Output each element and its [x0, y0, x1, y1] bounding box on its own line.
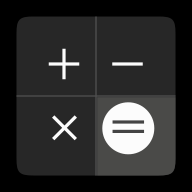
button[interactable]: Multiply: [41, 105, 87, 151]
button[interactable]: Equals: [99, 99, 157, 157]
button[interactable]: Add: [41, 41, 87, 87]
button[interactable]: Subtract: [104, 41, 150, 87]
